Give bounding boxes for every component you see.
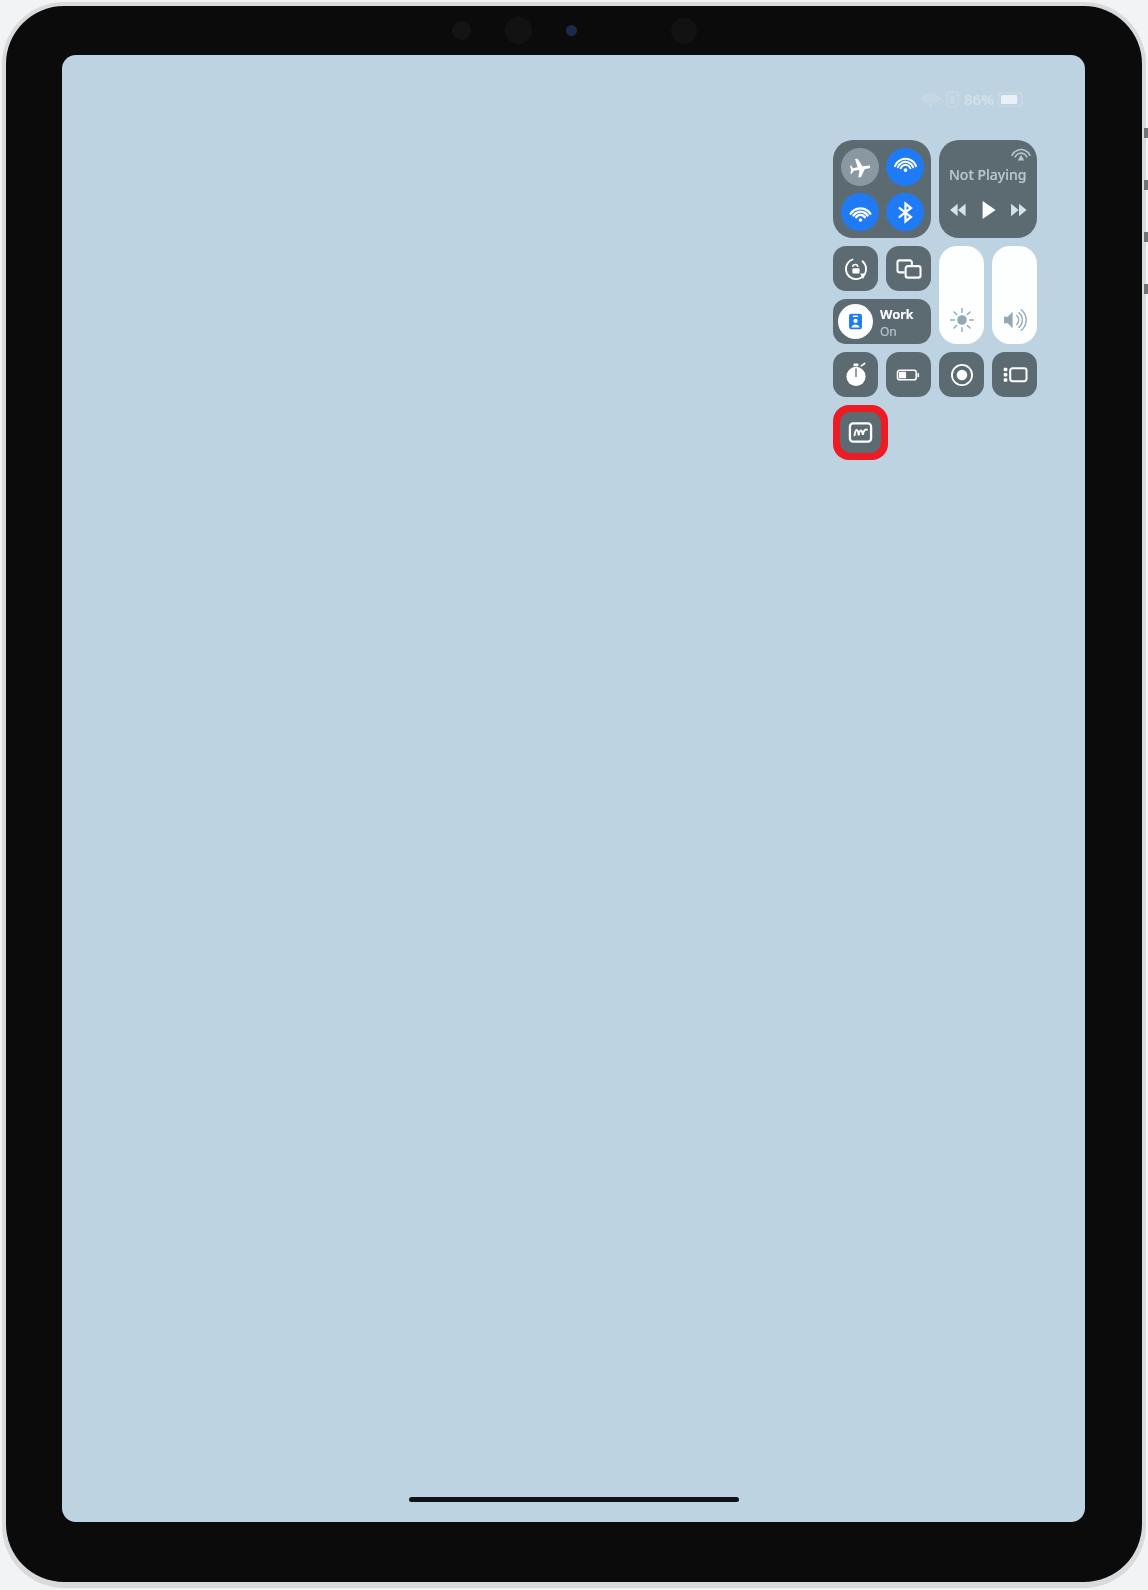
button[interactable]: Now Playing <box>939 140 1037 238</box>
button[interactable]: Wi-Fi <box>841 193 879 231</box>
button[interactable]: Low Power Mode <box>886 352 931 397</box>
button[interactable]: AirDrop <box>886 148 924 186</box>
staticText: Work <box>880 305 914 323</box>
staticText: On <box>880 323 897 339</box>
button[interactable]: Stage Manager <box>992 352 1037 397</box>
button[interactable]: Screen Mirroring <box>886 246 931 291</box>
button[interactable]: Timer <box>833 352 878 397</box>
button[interactable]: Next <box>1007 198 1031 222</box>
button[interactable]: Airplane Mode <box>841 148 879 186</box>
button[interactable]: Rotation Lock <box>833 246 878 291</box>
button[interactable]: Previous <box>946 198 970 222</box>
staticText: 86% <box>964 89 994 109</box>
button[interactable]: Volume <box>992 246 1037 344</box>
button[interactable]: Work <box>833 299 931 344</box>
button[interactable]: Quick Note <box>840 412 881 453</box>
button[interactable]: Screen Record <box>939 352 984 397</box>
button[interactable]: Bluetooth <box>886 193 924 231</box>
staticText: Not Playing <box>949 165 1027 184</box>
button[interactable]: Connectivity <box>833 140 931 238</box>
button[interactable]: Play <box>976 198 1000 222</box>
button[interactable]: Brightness <box>939 246 984 344</box>
